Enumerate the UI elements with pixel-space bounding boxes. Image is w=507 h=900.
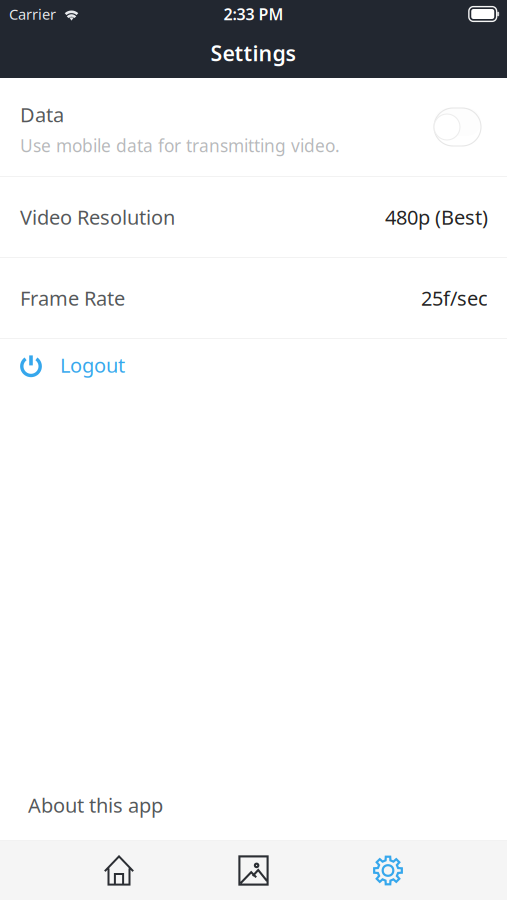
button[interactable]: About this app <box>0 770 507 840</box>
button[interactable]: Gallery <box>186 841 321 900</box>
staticText: Settings <box>210 39 296 67</box>
staticText: Carrier <box>9 4 56 24</box>
button[interactable]: Home <box>52 841 186 900</box>
button[interactable]: Settings <box>321 841 455 900</box>
staticText: 25f/sec <box>421 285 488 311</box>
button[interactable]: Logout <box>0 339 507 391</box>
staticText: About this app <box>28 792 163 818</box>
staticText: 2:33 PM <box>223 3 283 25</box>
button[interactable]: Video Resolution <box>0 177 507 257</box>
staticText: Use mobile data for transmitting video. <box>20 134 340 157</box>
button[interactable]: Data <box>0 78 507 176</box>
staticText: Frame Rate <box>20 285 125 311</box>
staticText: Video Resolution <box>20 204 175 230</box>
staticText: 480p (Best) <box>385 204 488 230</box>
button[interactable]: Frame Rate <box>0 258 507 338</box>
staticText: Logout <box>60 352 125 378</box>
staticText: Data <box>20 101 64 128</box>
